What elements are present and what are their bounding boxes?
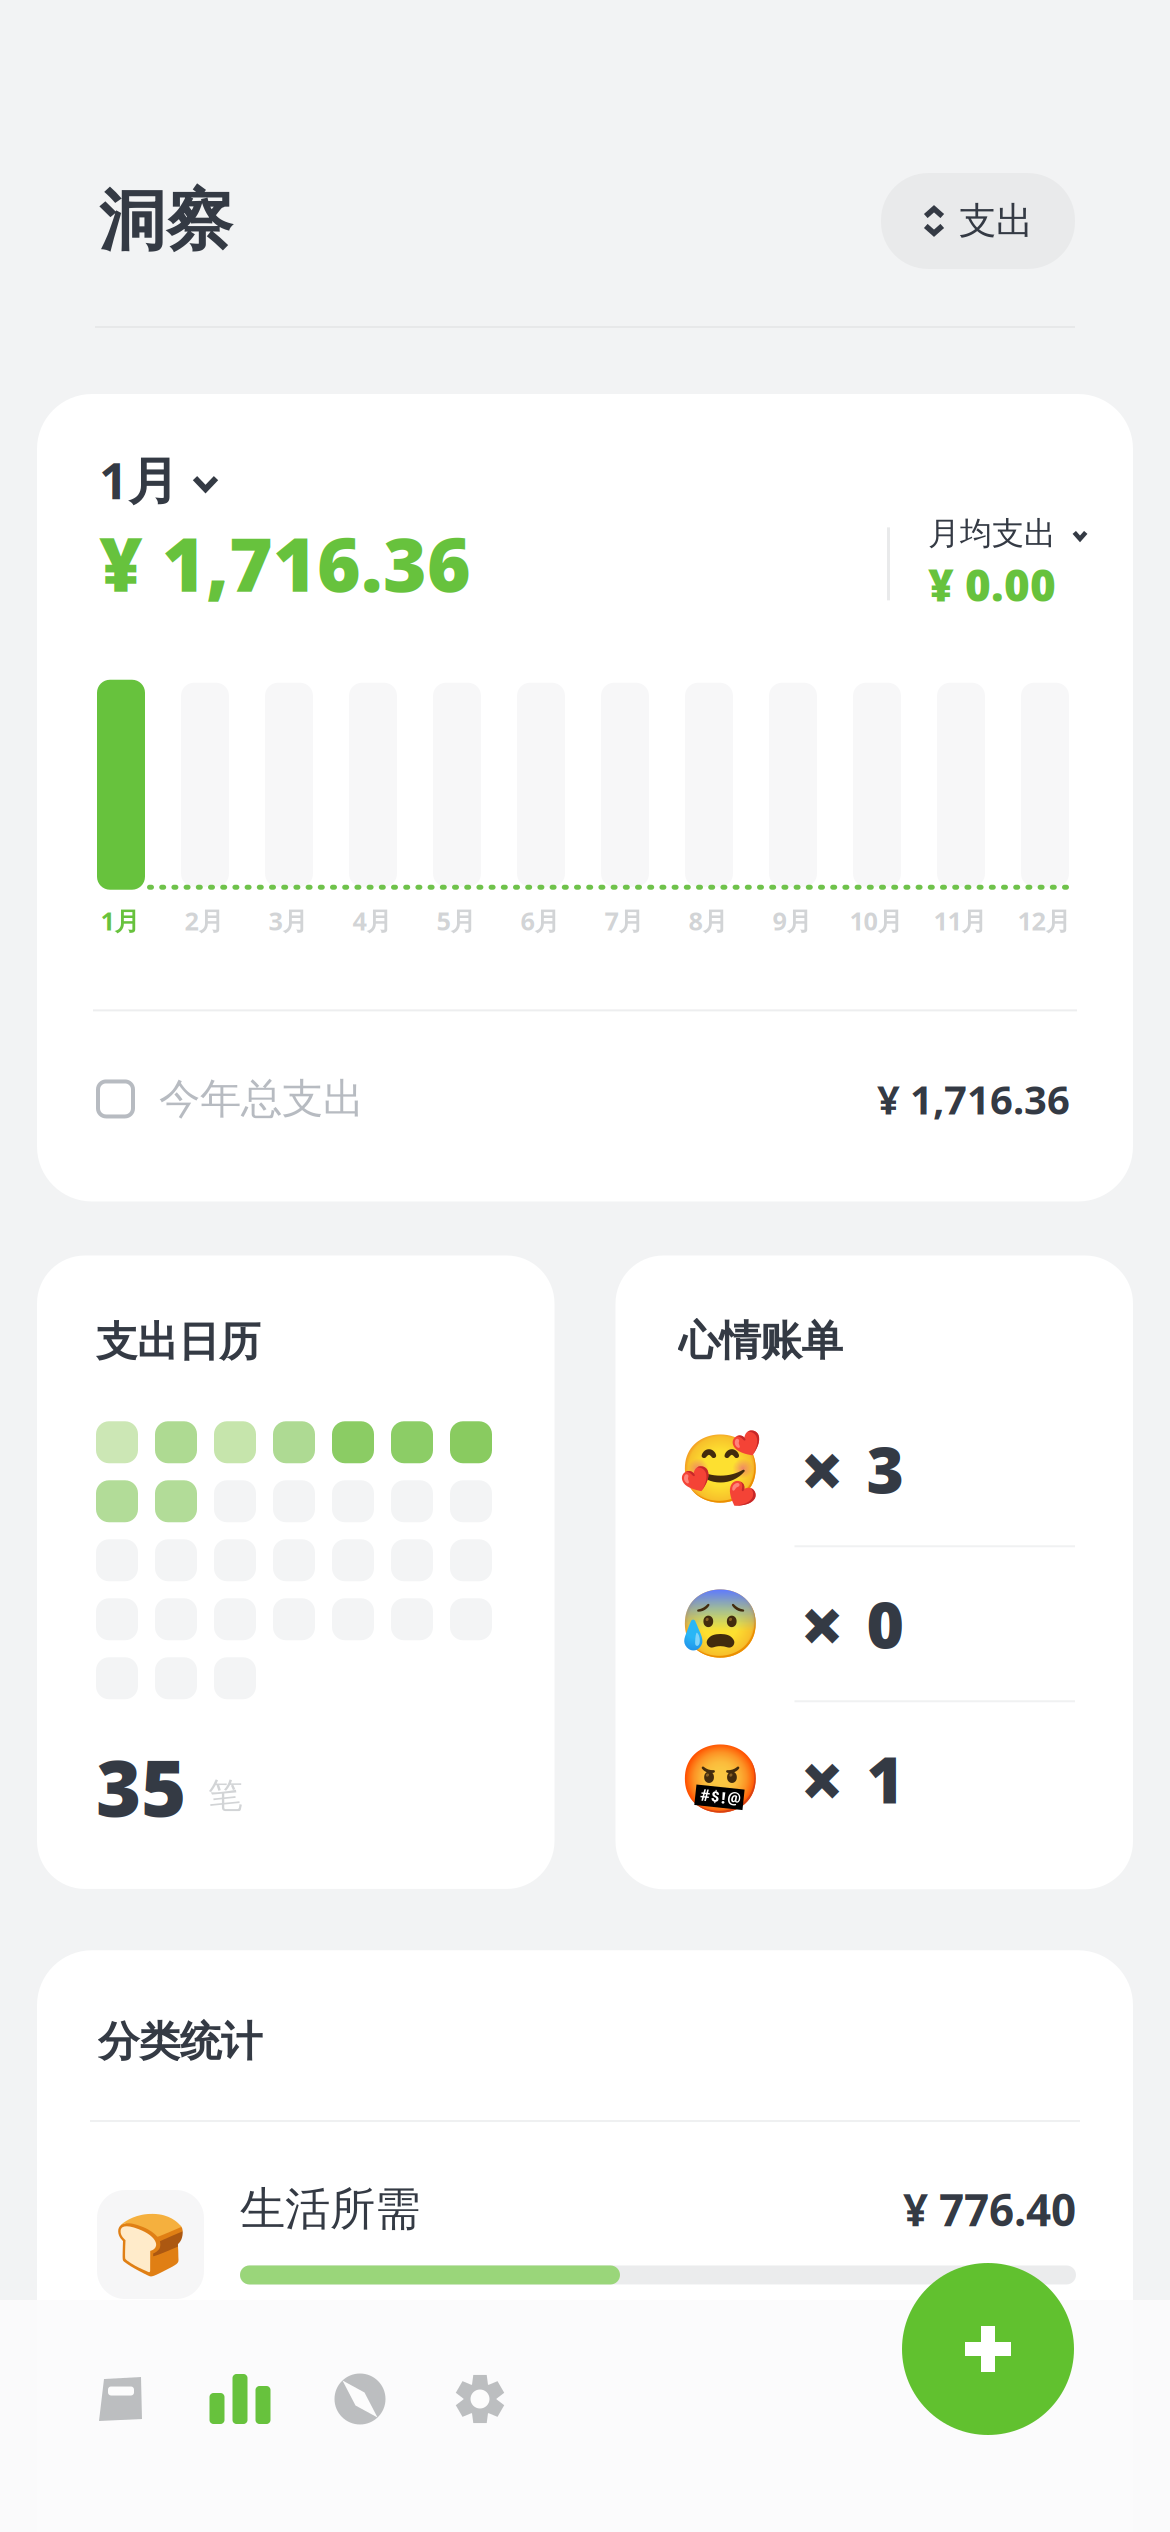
staticText: 0 bbox=[866, 1581, 904, 1666]
staticText: 4月 bbox=[352, 904, 391, 937]
staticText: 9月 bbox=[772, 904, 811, 937]
button[interactable]: 账本 bbox=[60, 2349, 180, 2449]
staticText: × bbox=[799, 1727, 844, 1830]
staticText: 分类统计 bbox=[98, 2016, 262, 2067]
staticText: 2月 bbox=[184, 904, 223, 937]
staticText: 支出日历 bbox=[96, 1316, 260, 1367]
button[interactable]: 月均支出 bbox=[928, 514, 1088, 553]
button[interactable]: 支出 bbox=[881, 173, 1075, 269]
staticText: 1 bbox=[866, 1736, 904, 1821]
button[interactable]: 发现 bbox=[300, 2349, 420, 2449]
staticText: 10月 bbox=[849, 904, 902, 937]
staticText: 🤬 bbox=[678, 1741, 761, 1817]
staticText: ¥ 1,716.36 bbox=[99, 513, 471, 612]
staticText: 🍞 bbox=[114, 2211, 187, 2278]
staticText: 12月 bbox=[1017, 904, 1070, 937]
staticText: 支出 bbox=[959, 198, 1033, 244]
staticText: × bbox=[799, 1417, 844, 1520]
staticText: 🥰 bbox=[678, 1431, 761, 1507]
staticText: 11月 bbox=[933, 904, 986, 937]
button[interactable]: 设置 bbox=[420, 2349, 540, 2449]
staticText: ¥ 776.40 bbox=[903, 2180, 1076, 2238]
staticText: 生活所需 bbox=[240, 2181, 420, 2237]
staticText: 月均支出 bbox=[928, 514, 1056, 553]
button[interactable]: 统计 bbox=[180, 2349, 300, 2449]
staticText: × bbox=[799, 1572, 844, 1675]
staticText: 7月 bbox=[604, 904, 643, 937]
button[interactable]: 1月 bbox=[99, 446, 219, 513]
button[interactable]: 记一笔 bbox=[902, 2263, 1074, 2435]
staticText: 😰 bbox=[678, 1586, 761, 1662]
staticText: 6月 bbox=[520, 904, 559, 937]
staticText: 心情账单 bbox=[678, 1315, 842, 1366]
staticText: 5月 bbox=[436, 904, 475, 937]
staticText: 1月 bbox=[99, 446, 179, 513]
staticText: 35 bbox=[96, 1735, 186, 1838]
staticText: ¥ 0.00 bbox=[928, 555, 1056, 614]
staticText: 3月 bbox=[268, 904, 307, 937]
staticText: 1月 bbox=[100, 904, 139, 937]
staticText: 8月 bbox=[688, 904, 727, 937]
staticText: ¥ 1,716.36 bbox=[877, 1072, 1070, 1125]
staticText: 笔 bbox=[208, 1774, 243, 1817]
staticText: 今年总支出 bbox=[159, 1074, 364, 1124]
staticText: 洞察 bbox=[99, 180, 233, 262]
staticText: 3 bbox=[866, 1426, 904, 1511]
